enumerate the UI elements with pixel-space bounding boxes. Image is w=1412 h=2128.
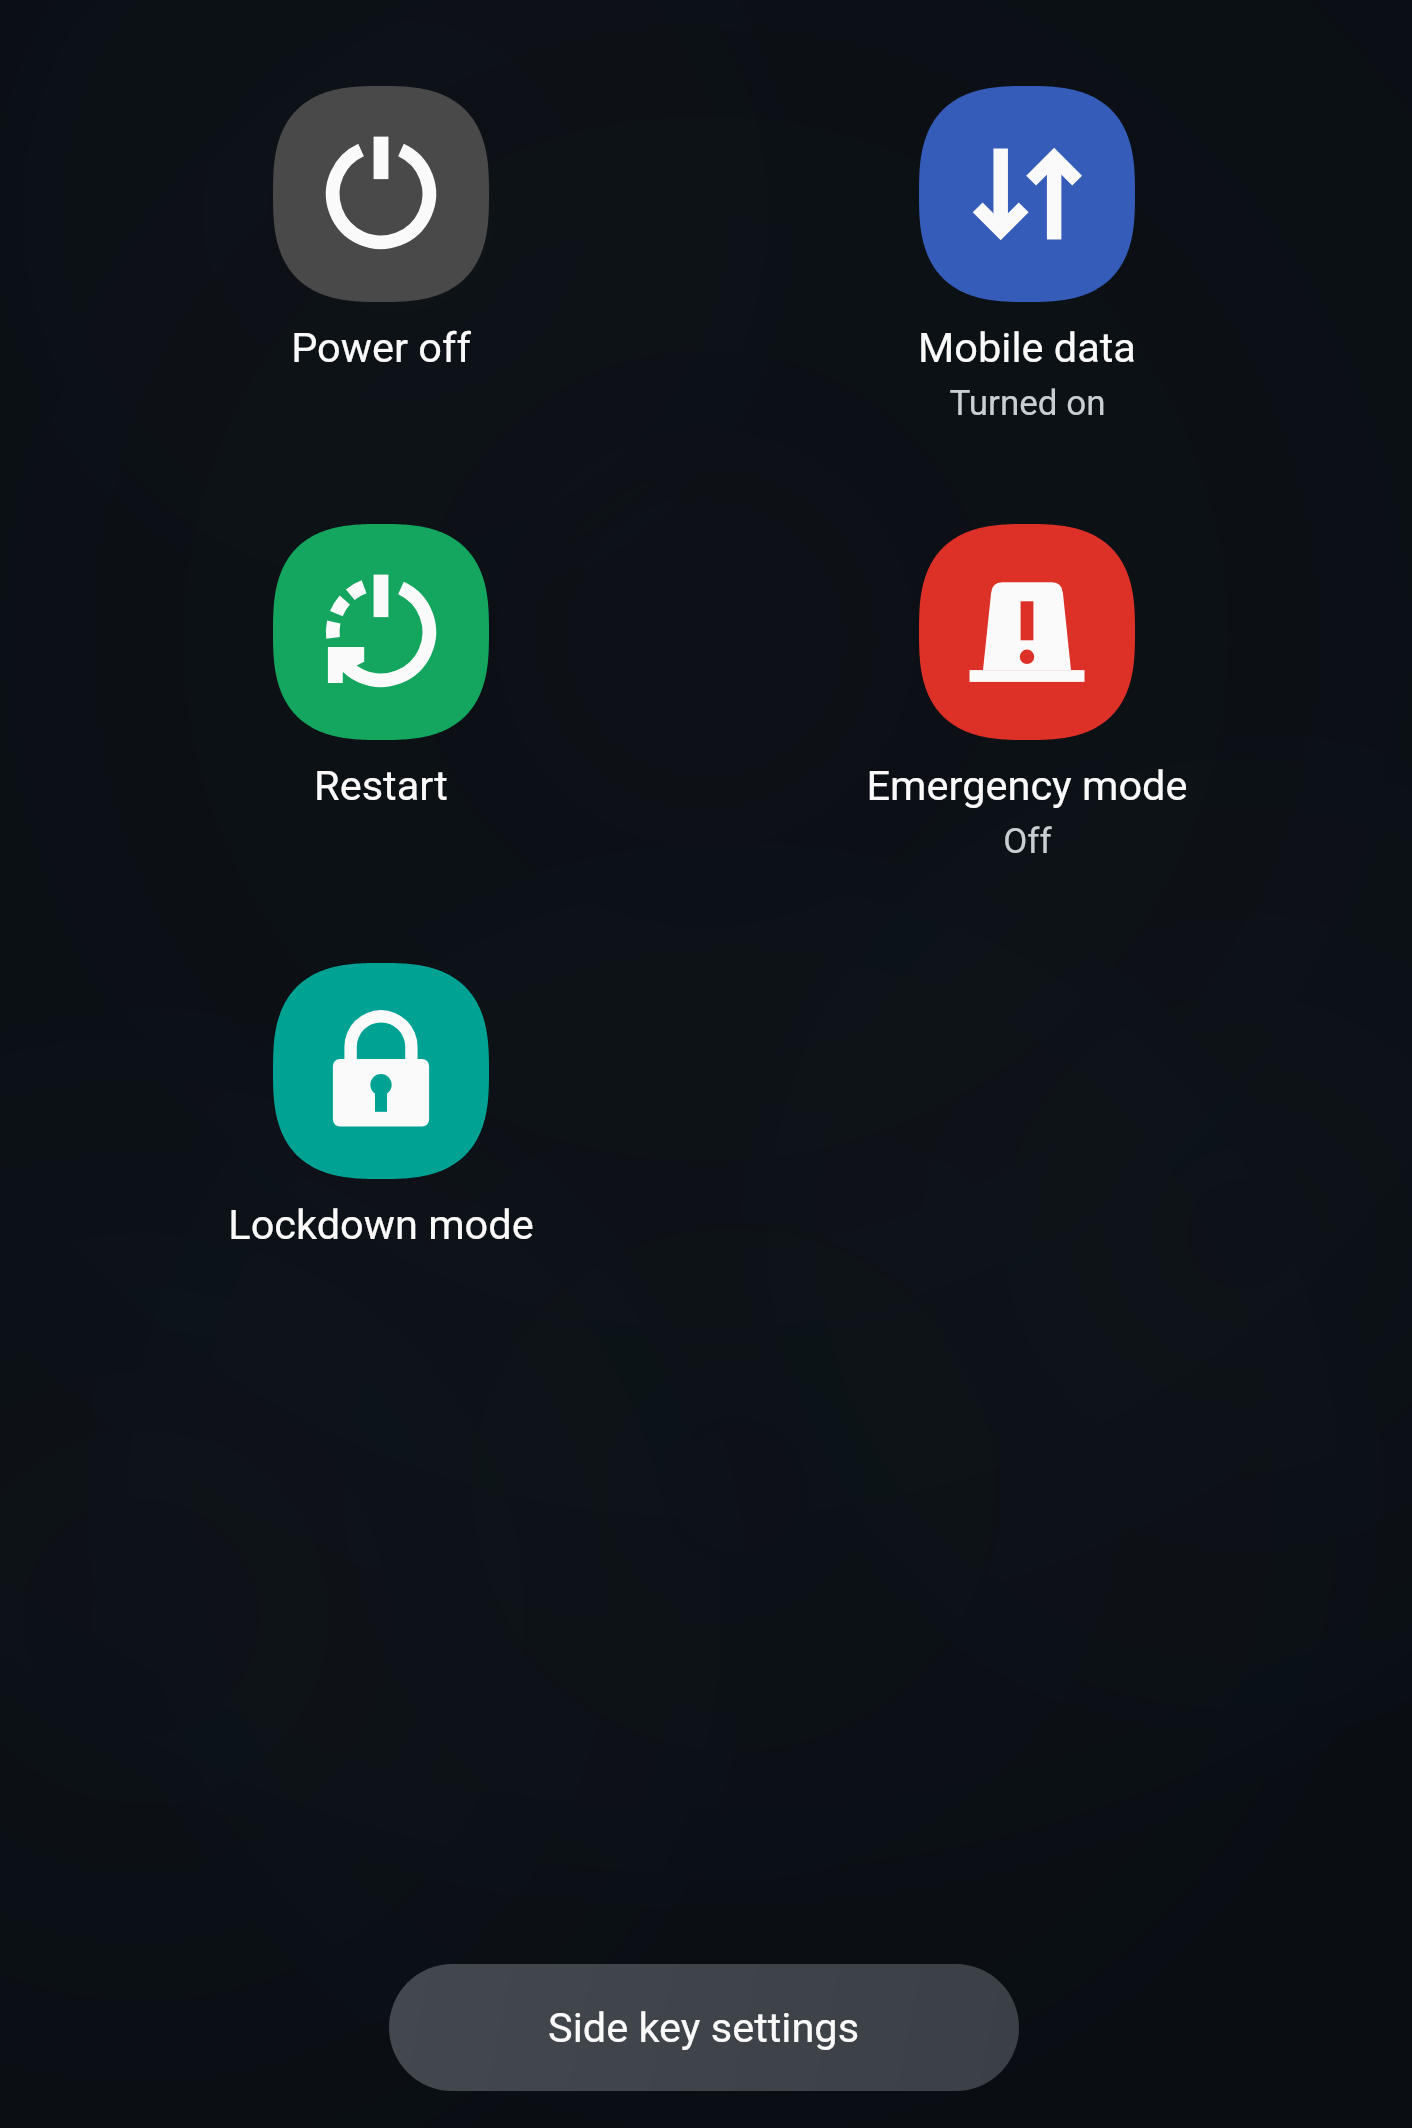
staticText: Power off xyxy=(291,323,471,372)
button[interactable]: Lockdown mode xyxy=(228,963,534,1249)
staticText: Emergency mode xyxy=(866,761,1188,810)
staticText: Lockdown mode xyxy=(228,1200,534,1249)
staticText: Off xyxy=(1003,821,1052,862)
staticText: Restart xyxy=(314,761,448,810)
staticText: Turned on xyxy=(949,383,1106,424)
button[interactable]: Side key settings xyxy=(389,1964,1019,2091)
button[interactable]: Power off xyxy=(273,86,489,372)
staticText: Mobile data xyxy=(918,323,1136,372)
button[interactable]: Restart xyxy=(273,524,489,810)
button[interactable]: Emergency mode xyxy=(866,524,1188,862)
staticText: Side key settings xyxy=(548,2003,860,2052)
button[interactable]: Mobile data xyxy=(918,86,1136,424)
